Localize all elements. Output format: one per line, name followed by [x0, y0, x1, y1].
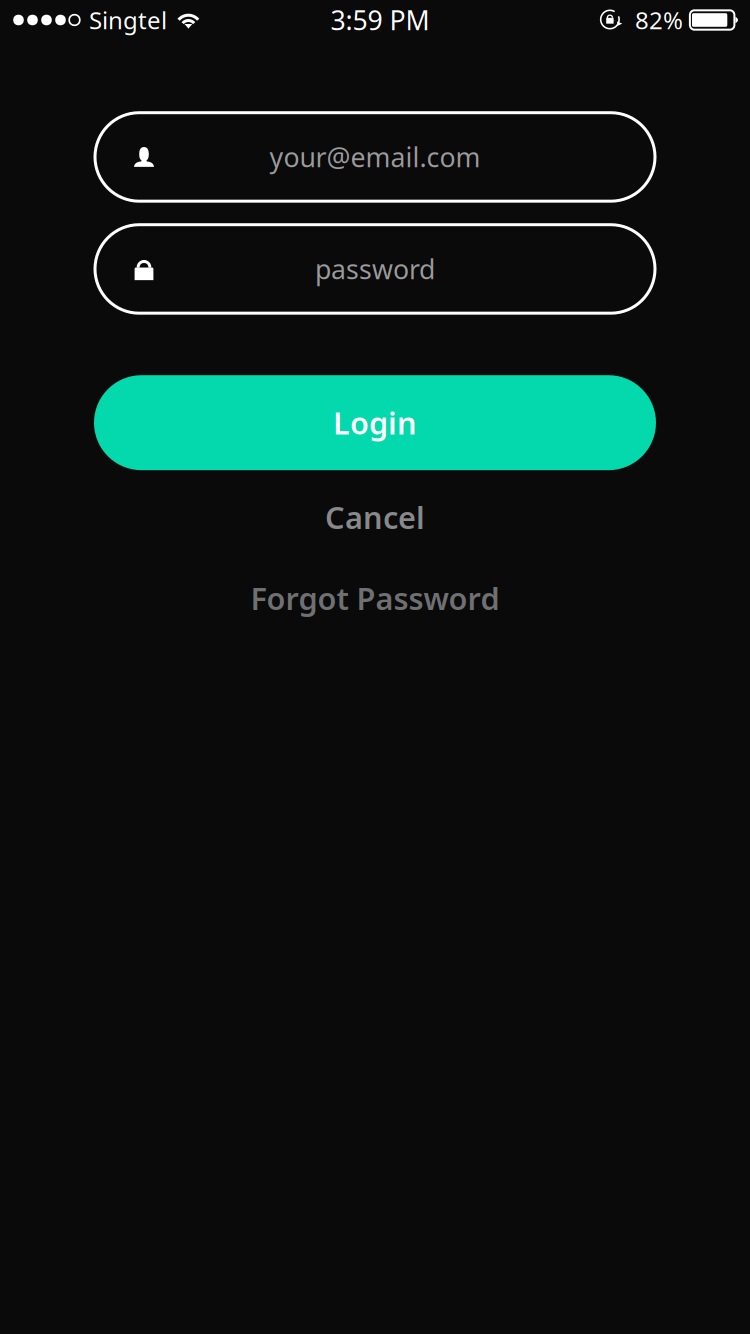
staticText: Cancel — [325, 497, 425, 537]
button[interactable]: Login — [94, 375, 656, 470]
staticText: 82% — [635, 4, 683, 36]
staticText: Singtel — [89, 4, 167, 36]
staticText: password — [315, 251, 435, 287]
staticText: Login — [333, 402, 417, 443]
button[interactable]: Forgot Password — [95, 558, 655, 638]
button[interactable]: your@email.com — [95, 113, 655, 201]
button[interactable]: Cancel — [95, 476, 655, 558]
button[interactable]: password — [95, 225, 655, 313]
staticText: your@email.com — [269, 139, 480, 175]
staticText: Forgot Password — [250, 578, 499, 618]
staticText: 3:59 PM — [330, 2, 429, 38]
